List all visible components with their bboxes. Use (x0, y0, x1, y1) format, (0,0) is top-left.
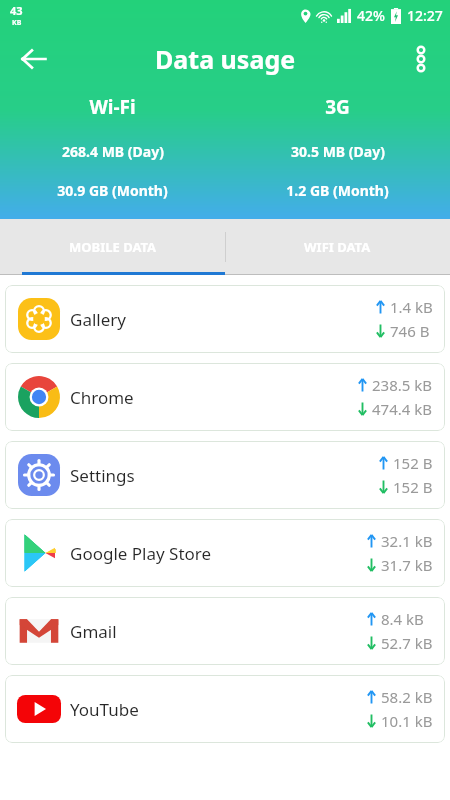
staticText: Gmail (70, 620, 117, 643)
staticText: 8.4 kB (381, 609, 424, 629)
button[interactable]: Google Play Store (5, 519, 445, 587)
staticText: 32.1 kB (381, 531, 433, 551)
button[interactable]: Gallery (5, 285, 445, 353)
button[interactable]: YouTube (5, 675, 445, 743)
button[interactable]: MOBILE DATA (0, 219, 225, 275)
staticText: 3G (325, 94, 350, 120)
staticText: Settings (70, 464, 135, 487)
button[interactable]: Settings (5, 441, 445, 509)
staticText: 10.1 kB (381, 711, 433, 731)
staticText: Chrome (70, 386, 134, 409)
staticText: Gallery (70, 308, 126, 331)
staticText: YouTube (70, 698, 139, 721)
staticText: 152 B (393, 477, 433, 497)
staticText: 12:27 (407, 6, 443, 25)
staticText: 152 B (393, 453, 433, 473)
staticText: Wi-Fi (89, 94, 136, 120)
staticText: 58.2 kB (381, 687, 433, 707)
staticText: 30.9 GB (Month) (57, 181, 168, 200)
staticText: MOBILE DATA (69, 238, 157, 256)
button[interactable]: Gmail (5, 597, 445, 665)
staticText: 30.5 MB (Day) (291, 142, 385, 161)
staticText: Data usage (155, 42, 296, 76)
staticText: 31.7 kB (381, 555, 433, 575)
button[interactable]: More options (398, 36, 444, 82)
staticText: 1.2 GB (Month) (286, 181, 389, 200)
staticText: 1.4 kB (390, 297, 433, 317)
staticText: 268.4 MB (Day) (62, 142, 164, 161)
staticText: 474.4 kB (372, 399, 433, 419)
staticText: WIFI DATA (304, 238, 371, 256)
button[interactable]: Chrome (5, 363, 445, 431)
staticText: 52.7 kB (381, 633, 433, 653)
staticText: Google Play Store (70, 542, 212, 565)
staticText: 238.5 kB (372, 375, 433, 395)
staticText: 42% (357, 6, 385, 25)
button[interactable]: WIFI DATA (225, 219, 450, 275)
staticText: 43 (10, 3, 23, 18)
button[interactable]: Back (10, 35, 58, 83)
staticText: 746 B (390, 321, 430, 341)
staticText: KB (12, 18, 22, 28)
